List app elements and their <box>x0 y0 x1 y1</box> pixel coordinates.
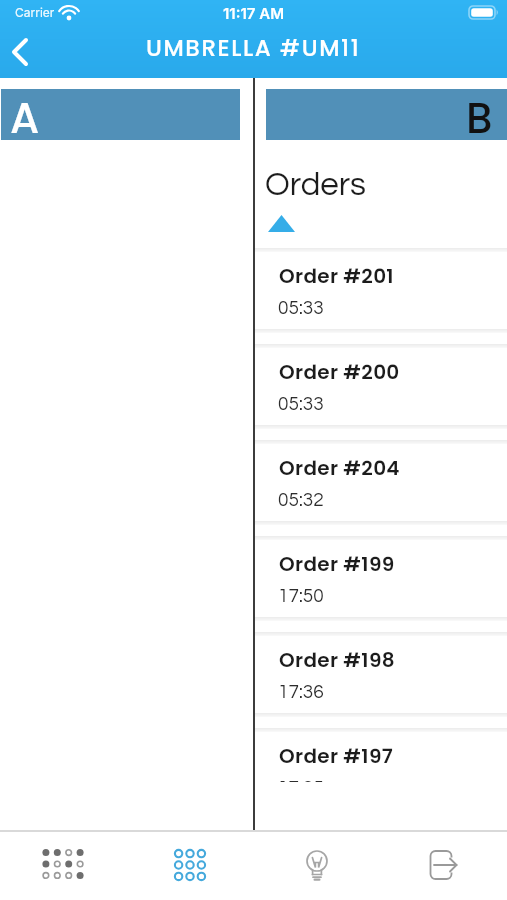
staticText: 05:33 <box>278 394 324 414</box>
staticText: 17:36 <box>278 682 324 702</box>
staticText: 17:50 <box>278 586 324 606</box>
staticText: Carrier <box>15 5 55 20</box>
staticText: 05:33 <box>278 298 324 318</box>
staticText: Order #200 <box>279 358 400 386</box>
button[interactable]: Order #198 <box>255 632 507 728</box>
staticText: 05:32 <box>278 490 324 510</box>
button[interactable] <box>0 26 40 78</box>
button[interactable] <box>126 832 253 900</box>
button[interactable]: Order #204 <box>255 440 507 536</box>
staticText: A <box>10 89 40 140</box>
button[interactable]: Order #199 <box>255 536 507 632</box>
staticText: 11:17 AM <box>223 4 284 22</box>
button[interactable] <box>0 832 126 900</box>
button[interactable] <box>380 832 507 900</box>
button[interactable]: Order #197 <box>255 728 507 782</box>
staticText: Order #198 <box>279 646 395 674</box>
staticText: UMBRELLA #UM11 <box>146 32 361 64</box>
button[interactable]: A <box>1 89 240 140</box>
staticText: Order #201 <box>279 262 394 290</box>
button[interactable]: B <box>266 89 507 140</box>
button[interactable] <box>253 832 380 900</box>
staticText: Orders <box>265 168 367 202</box>
staticText: 17:25 <box>278 778 324 782</box>
staticText: B <box>466 89 493 140</box>
staticText: Order #197 <box>279 742 393 770</box>
staticText: Order #204 <box>279 454 400 482</box>
staticText: Order #199 <box>279 550 395 578</box>
button[interactable]: Order #200 <box>255 344 507 440</box>
button[interactable]: Order #201 <box>255 248 507 344</box>
